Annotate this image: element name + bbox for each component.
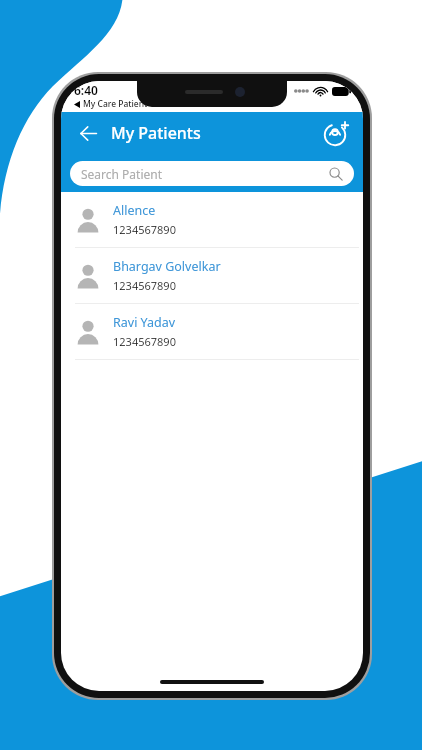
staticText: My Care Patient — [83, 98, 148, 110]
staticText: My Patients — [111, 122, 201, 144]
staticText: 1234567890 — [113, 222, 176, 237]
staticText: Allence — [113, 202, 156, 219]
staticText: 1234567890 — [113, 278, 176, 293]
button[interactable]: Bhargav Golvelkar — [61, 248, 363, 304]
button[interactable]: Add patient — [319, 116, 353, 150]
button[interactable]: Back — [71, 116, 105, 150]
button[interactable]: Allence — [61, 192, 363, 248]
staticText: 1234567890 — [113, 334, 176, 349]
staticText: 6:40 — [74, 82, 98, 98]
button[interactable]: Search Patient — [70, 161, 354, 186]
staticText: Search Patient — [81, 166, 329, 182]
button[interactable]: Ravi Yadav — [61, 304, 363, 360]
staticText: Ravi Yadav — [113, 314, 176, 331]
staticText: Bhargav Golvelkar — [113, 258, 221, 275]
